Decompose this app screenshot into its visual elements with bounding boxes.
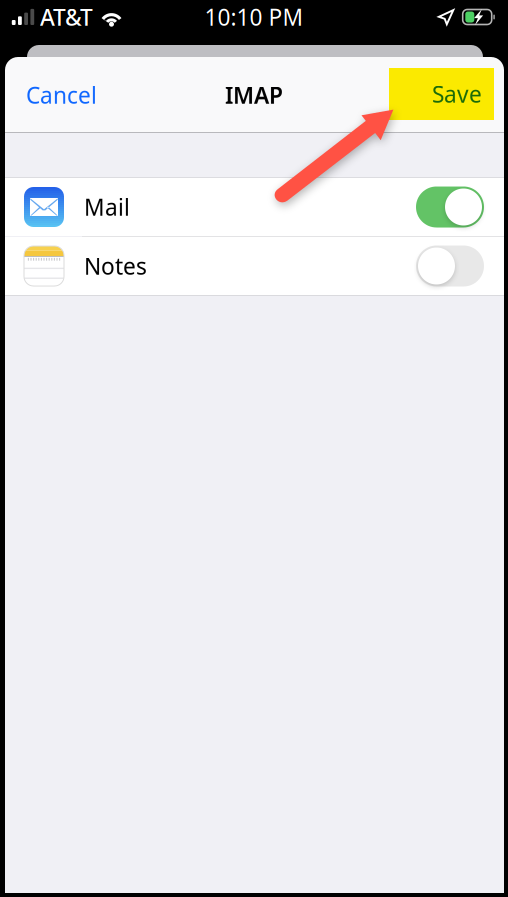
staticText: Notes bbox=[84, 251, 147, 281]
staticText: 10:10 PM bbox=[204, 2, 303, 32]
button[interactable]: Notes bbox=[5, 237, 504, 295]
staticText: AT&T bbox=[40, 2, 93, 32]
staticText: Save bbox=[432, 79, 482, 109]
staticText: Cancel bbox=[26, 80, 97, 110]
staticText: Mail bbox=[84, 192, 130, 222]
button[interactable]: Save bbox=[389, 68, 494, 120]
button[interactable]: Cancel bbox=[26, 70, 112, 120]
button[interactable]: Mail bbox=[5, 178, 504, 236]
staticText: IMAP bbox=[225, 80, 283, 110]
